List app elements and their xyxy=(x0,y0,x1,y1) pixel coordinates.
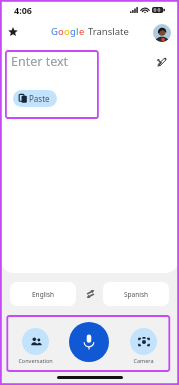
staticText: l xyxy=(76,25,79,38)
staticText: o xyxy=(64,25,70,38)
staticText: o xyxy=(58,25,64,38)
staticText: 4:06 xyxy=(14,4,32,16)
button[interactable]: Camera xyxy=(121,328,165,364)
button[interactable]: Handwriting input xyxy=(152,52,171,71)
button[interactable]: Speak xyxy=(69,322,109,362)
button[interactable]: Spanish xyxy=(103,282,169,306)
button[interactable]: Saved translations xyxy=(4,23,22,41)
staticText: Camera xyxy=(133,357,154,364)
staticText: g xyxy=(70,25,76,38)
button[interactable]: Swap languages xyxy=(80,284,100,304)
staticText: English xyxy=(32,290,55,299)
button[interactable]: Conversation xyxy=(13,328,57,364)
staticText: Enter text xyxy=(11,53,69,70)
button[interactable]: English xyxy=(10,282,76,306)
staticText: Spanish xyxy=(124,290,149,299)
staticText: G xyxy=(51,25,58,38)
staticText: Conversation xyxy=(18,357,53,364)
button[interactable]: Paste xyxy=(13,90,57,107)
staticText: e xyxy=(79,25,85,38)
button[interactable]: Account xyxy=(153,24,171,42)
staticText: Paste xyxy=(29,93,50,104)
staticText: Translate xyxy=(88,25,129,38)
